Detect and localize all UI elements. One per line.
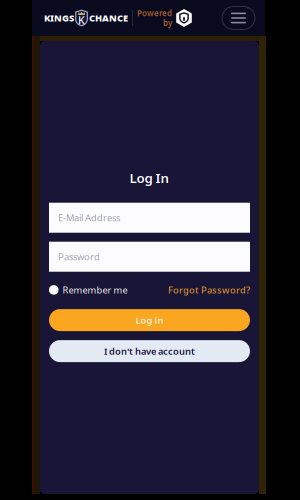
- staticText: I don't have account: [104, 345, 195, 357]
- button[interactable]: I don't have account: [49, 340, 250, 362]
- button[interactable]: Menu: [222, 6, 255, 29]
- staticText: Log In: [129, 169, 169, 187]
- button[interactable]: Forgot Password?: [168, 284, 250, 296]
- staticText: by: [163, 17, 172, 28]
- staticText: K: [78, 13, 85, 27]
- staticText: Log in: [135, 314, 163, 326]
- staticText: Forgot Password?: [168, 284, 250, 296]
- button[interactable]: Log in: [49, 309, 250, 331]
- staticText: Powered: [137, 8, 172, 18]
- staticText: Remember me: [62, 284, 127, 296]
- staticText: E-Mail Address: [58, 211, 120, 224]
- staticText: KINGS: [44, 12, 74, 24]
- staticText: Password: [58, 250, 100, 263]
- button[interactable]: Remember me: [49, 284, 127, 296]
- staticText: CHANCE: [89, 12, 128, 24]
